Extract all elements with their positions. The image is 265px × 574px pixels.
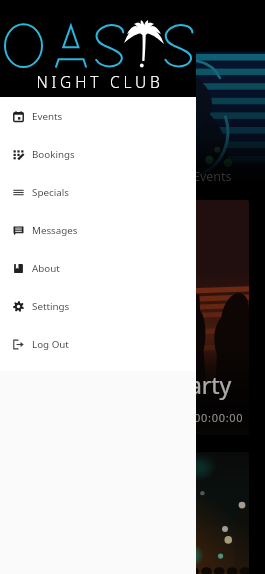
staticText: Events xyxy=(193,168,232,185)
button[interactable]: Specials xyxy=(0,173,196,211)
other: Log Out xyxy=(13,339,24,350)
other: Events xyxy=(13,111,24,122)
staticText: NIGHT CLUB xyxy=(36,71,164,92)
other: Specials xyxy=(13,187,24,198)
other: Settings xyxy=(13,301,24,312)
staticText: Settings xyxy=(32,300,70,313)
button[interactable]: Settings xyxy=(0,287,196,325)
other: Bookings xyxy=(13,149,24,160)
staticText: Events xyxy=(32,110,63,123)
staticText: Bookings xyxy=(32,148,75,161)
button[interactable]: Bookings xyxy=(0,135,196,173)
button[interactable]: Events xyxy=(0,97,196,135)
staticText: Summer Pool Party xyxy=(23,369,232,400)
other: About xyxy=(13,263,24,274)
button[interactable]: Summer Pool Party xyxy=(16,200,249,435)
other: Messages xyxy=(13,225,24,236)
button[interactable]: About xyxy=(0,249,196,287)
staticText: Messages xyxy=(32,224,78,237)
button[interactable]: Log Out xyxy=(0,325,196,363)
staticText: Event Starts In 00 Days 00D T00:00:00 xyxy=(23,410,244,425)
button[interactable]: Neon Glow Night xyxy=(16,452,249,574)
staticText: Log Out xyxy=(32,338,69,351)
staticText: About xyxy=(32,262,60,275)
button[interactable]: Messages xyxy=(0,211,196,249)
staticText: Specials xyxy=(32,186,69,199)
